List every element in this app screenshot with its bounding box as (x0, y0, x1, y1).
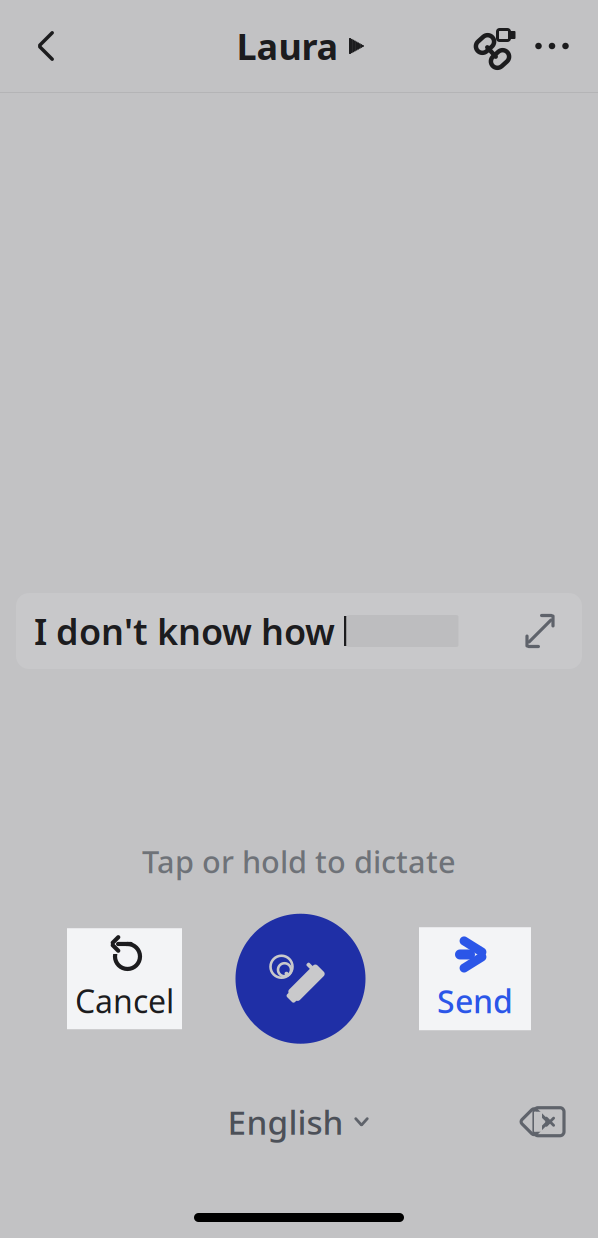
staticText: Send (437, 979, 513, 1022)
button[interactable]: Expand text field (516, 607, 564, 655)
staticText: Cancel (75, 979, 174, 1022)
button[interactable]: Dictate (235, 914, 365, 1044)
staticText: English (227, 1100, 343, 1144)
button[interactable]: Send (419, 927, 531, 1030)
button[interactable]: Delete (512, 1098, 574, 1146)
staticText: I don't know how (34, 607, 344, 655)
button[interactable]: Back (18, 17, 74, 75)
button[interactable]: English (217, 1094, 380, 1150)
button[interactable]: Video call (468, 17, 524, 75)
staticText: Laura (236, 22, 338, 70)
button[interactable]: Cancel (67, 928, 182, 1029)
staticText: Tap or hold to dictate (142, 841, 456, 882)
button[interactable]: More options (524, 17, 580, 75)
